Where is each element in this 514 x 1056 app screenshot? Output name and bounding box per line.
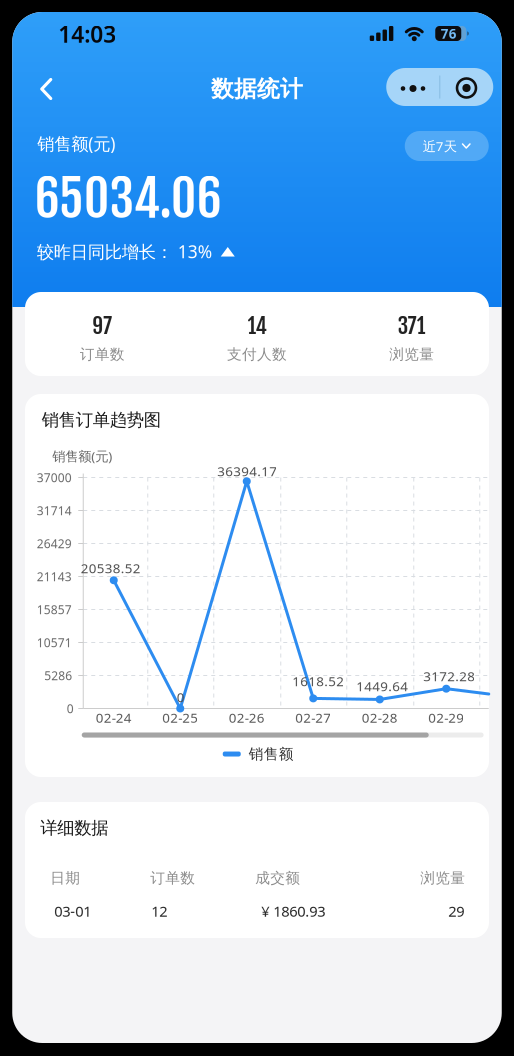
staticText: 03-01 [54,901,91,921]
button[interactable]: Close [440,68,493,106]
staticText: 15857 [37,601,72,617]
staticText: 31714 [37,502,72,518]
button[interactable]: Back [29,69,63,109]
staticText: 65034.06 [35,168,222,230]
staticText: 成交额 [255,869,300,887]
staticText: 76 [441,25,457,42]
staticText: 02-28 [362,709,398,726]
staticText: 97 [92,313,112,339]
staticText: 订单数 [150,869,195,887]
staticText: 1618.52 [292,672,344,690]
staticText: 0 [67,700,74,716]
staticText: 销售额(元) [52,447,112,465]
staticText: 02-25 [162,709,198,726]
staticText: 浏览量 [420,869,465,887]
staticText: 销售订单趋势图 [42,409,161,431]
staticText: 1449.64 [356,677,408,695]
staticText: ¥ 1860.93 [261,901,325,921]
staticText: 29 [448,901,464,921]
staticText: 36394.17 [217,462,277,480]
staticText: 订单数 [80,345,125,363]
staticText: 5286 [44,667,72,683]
staticText: 0 [177,688,185,706]
staticText: 26429 [37,535,72,551]
staticText: 数据统计 [211,75,303,103]
staticText: 详细数据 [40,817,108,839]
staticText: 12 [151,901,167,921]
staticText: 支付人数 [227,345,287,363]
staticText: 02-27 [295,709,331,726]
staticText: 14 [247,313,266,339]
staticText: 销售额 [249,745,294,763]
staticText: 371 [398,313,426,339]
staticText: 浏览量 [389,345,434,363]
staticText: 日期 [50,869,80,887]
staticText: 20538.52 [81,559,141,577]
staticText: 10571 [37,634,72,650]
staticText: 02-26 [229,709,265,726]
staticText: 14:03 [58,19,116,49]
button[interactable]: More [386,68,439,106]
button[interactable]: 近7天 [405,131,489,161]
staticText: 02-29 [428,709,464,726]
staticText: 37000 [37,469,72,485]
staticText: 近7天 [423,137,457,155]
staticText: 02-24 [96,709,132,726]
staticText: 较昨日同比增长： 13% [37,240,212,263]
staticText: 3172.28 [423,667,475,685]
staticText: 21143 [37,568,72,584]
staticText: 销售额(元) [37,132,115,155]
